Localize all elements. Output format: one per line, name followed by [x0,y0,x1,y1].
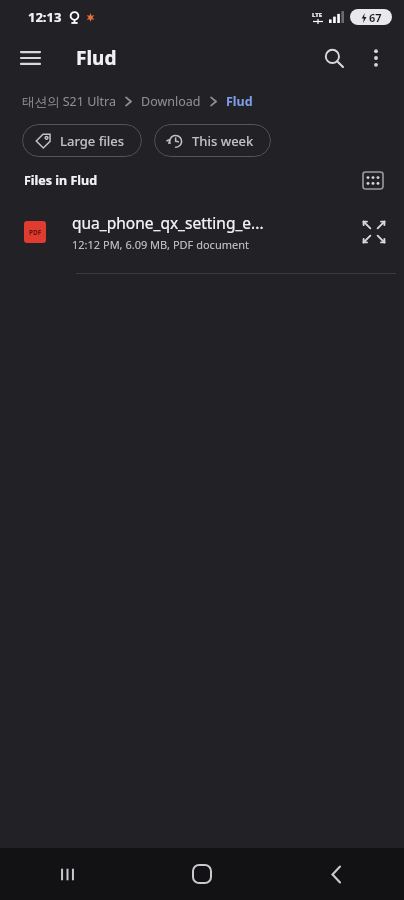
staticText: 태션의 S21 Ultra [22,93,116,110]
staticText: PDF [29,228,42,237]
staticText: Large files [60,132,125,150]
button[interactable]: More options [356,38,396,78]
staticText: 67 [369,10,382,25]
staticText: Files in Flud [24,172,98,189]
button[interactable]: Large files [22,124,142,157]
button[interactable]: Back [269,848,404,900]
button[interactable]: Search [312,36,356,80]
button[interactable]: This week [154,124,271,157]
button[interactable]: PDF [0,203,404,261]
button[interactable]: Flud [226,93,253,110]
staticText: Flud [226,93,253,110]
staticText: Flud [76,45,117,71]
button[interactable]: Recent apps [0,848,134,900]
staticText: Download [141,93,201,110]
button[interactable]: Home [134,848,269,900]
staticText: LTE [312,11,323,19]
button[interactable]: Switch to grid view [356,163,390,197]
staticText: This week [192,132,254,150]
button[interactable]: Expand [354,212,394,252]
staticText: 12:13 [28,8,62,26]
button[interactable]: Open navigation drawer [10,38,50,78]
button[interactable]: Download [141,93,201,110]
button[interactable]: 태션의 S21 Ultra [22,93,116,110]
staticText: qua_phone_qx_setting_e... [72,212,264,233]
staticText: 12:12 PM, 6.09 MB, PDF document [72,237,249,252]
